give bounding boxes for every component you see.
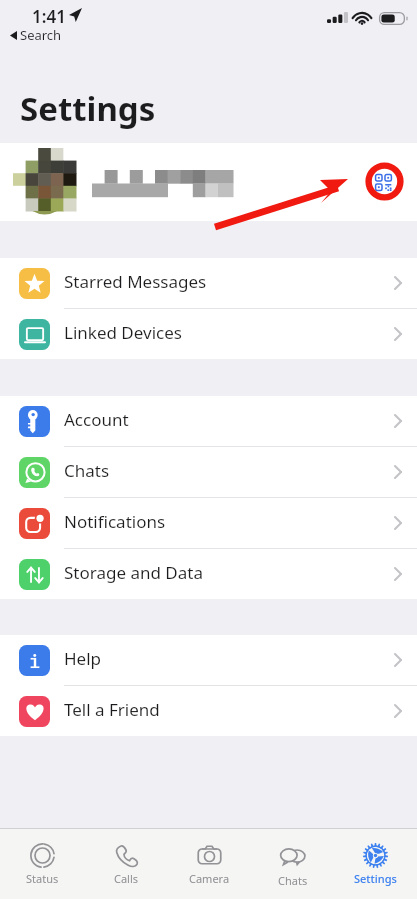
button[interactable]: QR code — [0, 143, 417, 221]
staticText: Starred Messages — [64, 270, 207, 293]
staticText: Account — [64, 408, 129, 431]
button[interactable]: Storage and Data — [0, 549, 417, 599]
button[interactable]: Notifications — [0, 498, 417, 548]
staticText: Chats — [64, 459, 110, 482]
button[interactable]: Status — [0, 829, 84, 899]
staticText: Tell a Friend — [64, 698, 160, 721]
button[interactable]: Chats — [0, 447, 417, 497]
button[interactable]: QR code — [365, 164, 401, 200]
staticText: Settings — [20, 86, 156, 131]
button[interactable]: Linked Devices — [0, 309, 417, 359]
staticText: Settings — [354, 871, 397, 886]
staticText: Chats — [278, 873, 308, 888]
staticText: Storage and Data — [64, 561, 203, 584]
staticText: Status — [26, 871, 59, 886]
button[interactable]: Tell a Friend — [0, 686, 417, 736]
staticText: Camera — [189, 871, 230, 886]
button[interactable]: Settings — [334, 829, 417, 899]
staticText: Linked Devices — [64, 321, 182, 344]
button[interactable]: Help — [0, 635, 417, 685]
button[interactable]: Chats — [251, 829, 334, 899]
button[interactable]: Starred Messages — [0, 258, 417, 308]
staticText: Help — [64, 647, 102, 670]
button[interactable]: Calls — [84, 829, 168, 899]
staticText: Notifications — [64, 510, 166, 533]
staticText: Search — [20, 26, 62, 44]
button[interactable]: Camera — [168, 829, 251, 899]
staticText: Calls — [114, 871, 139, 886]
staticText: 1:41 — [32, 5, 66, 28]
button[interactable]: Account — [0, 396, 417, 446]
